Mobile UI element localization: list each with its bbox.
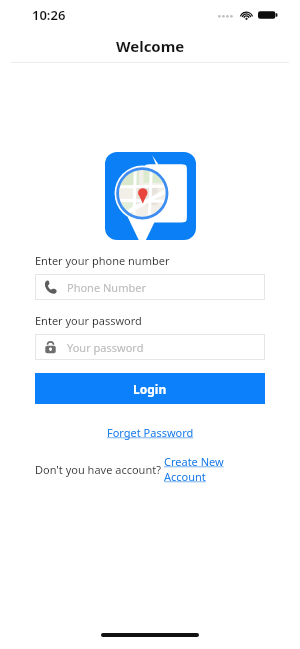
button[interactable]: Login [35, 373, 265, 404]
staticText: Enter your password [35, 313, 142, 328]
staticText: Welcome [116, 36, 185, 56]
button[interactable]: Your password [35, 334, 265, 360]
button[interactable]: Create New Account [164, 454, 265, 484]
button[interactable]: Phone Number [35, 274, 265, 300]
staticText: Create New Account [164, 454, 265, 484]
staticText: Enter your phone number [35, 253, 170, 268]
staticText: Forget Password [107, 425, 194, 440]
button[interactable]: Forget Password [107, 425, 194, 440]
staticText: Login [133, 381, 167, 397]
staticText: 10:26 [32, 6, 66, 24]
staticText: Don't you have account? [35, 462, 164, 477]
staticText: Your password [67, 340, 144, 355]
staticText: Phone Number [67, 280, 146, 295]
